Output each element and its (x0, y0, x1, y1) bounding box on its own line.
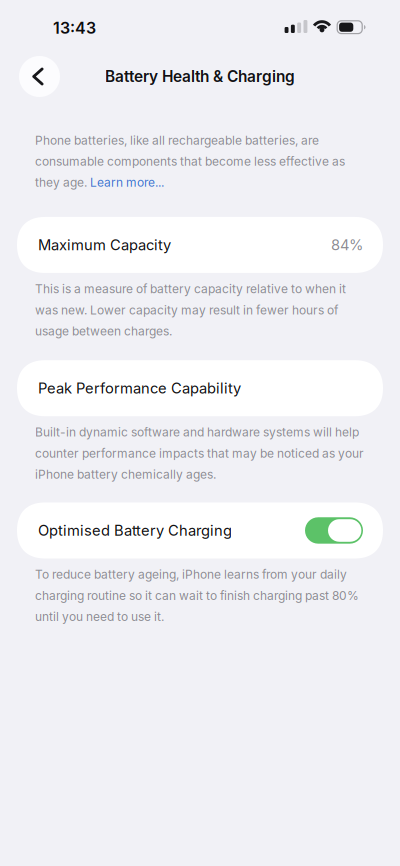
staticText: Optimised Battery Charging (38, 522, 232, 539)
staticText: Battery Health & Charging (105, 67, 295, 86)
staticText: Maximum Capacity (38, 236, 171, 254)
staticText: To reduce battery ageing, iPhone learns … (35, 567, 359, 624)
staticText: Built-in dynamic software and hardware s… (35, 425, 364, 482)
staticText: Phone batteries, like all rechargeable b… (35, 133, 345, 190)
button[interactable]: Back (19, 56, 60, 97)
staticText: This is a measure of battery capacity re… (35, 282, 346, 338)
staticText: 13:43 (53, 18, 96, 38)
button[interactable]: Peak Performance Capability (0, 360, 400, 416)
staticText: Peak Performance Capability (38, 379, 241, 397)
staticText: 84% (331, 236, 363, 254)
button[interactable]: Optimised Battery Charging (0, 502, 400, 558)
